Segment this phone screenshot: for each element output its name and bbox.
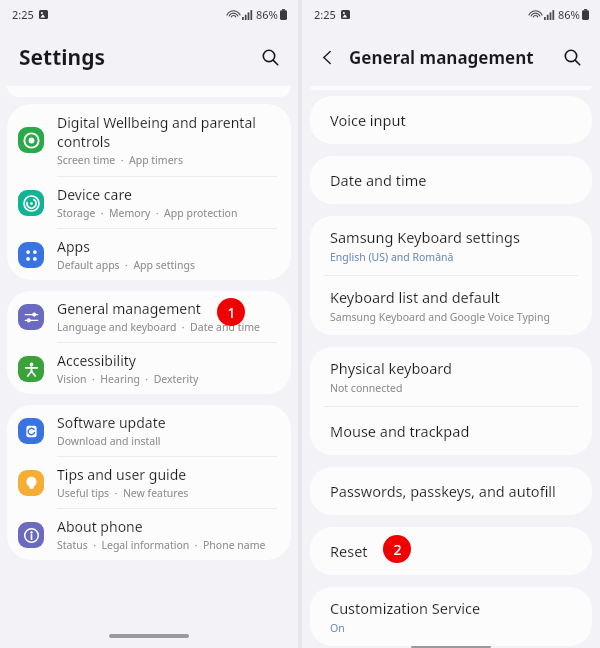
staticText: Tips and user guide (57, 465, 187, 484)
staticText: Date and time (330, 170, 427, 190)
button[interactable]: About phone (7, 509, 291, 560)
button[interactable]: Back (312, 42, 342, 72)
staticText: 1 (227, 303, 236, 322)
staticText: Voice input (330, 110, 406, 130)
staticText: Samsung Keyboard settings (330, 227, 520, 247)
staticText: Vision · Hearing · Dexterity (57, 372, 199, 386)
button[interactable]: Accessibility (7, 343, 291, 394)
staticText: 2:25 (12, 7, 34, 22)
staticText: General management (349, 46, 534, 69)
staticText: Settings (19, 43, 106, 72)
button[interactable]: Passwords, passkeys, and autofill (310, 467, 592, 515)
staticText: Accessibility (57, 351, 136, 370)
button[interactable]: Search (557, 42, 587, 72)
button[interactable]: Device care (7, 177, 291, 228)
staticText: Reset (330, 541, 368, 561)
staticText: Keyboard list and default (330, 287, 500, 307)
staticText: Status · Legal information · Phone name (57, 538, 266, 552)
staticText: Apps (57, 237, 90, 256)
staticText: Digital Wellbeing and parental controls (57, 113, 256, 151)
staticText: Mouse and trackpad (330, 421, 470, 441)
staticText: English (US) and Română (330, 250, 454, 264)
staticText: About phone (57, 517, 143, 536)
staticText: On (330, 621, 345, 635)
button[interactable]: Voice input (310, 96, 592, 144)
staticText: Device care (57, 185, 132, 204)
button[interactable]: Reset (310, 527, 592, 575)
staticText: 86% (558, 7, 580, 22)
button[interactable]: Search (255, 42, 285, 72)
staticText: Samsung Keyboard and Google Voice Typing (330, 310, 550, 324)
staticText: 86% (256, 7, 278, 22)
button[interactable]: Keyboard list and default (310, 276, 592, 335)
staticText: Screen time · App timers (57, 153, 183, 167)
staticText: Passwords, passkeys, and autofill (330, 481, 556, 501)
button[interactable]: Mouse and trackpad (310, 407, 592, 455)
staticText: Language and keyboard · Date and time (57, 320, 260, 334)
staticText: Storage · Memory · App protection (57, 206, 238, 220)
staticText: 2:25 (314, 7, 336, 22)
staticText: Software update (57, 413, 166, 432)
button[interactable]: Physical keyboard (310, 347, 592, 406)
button[interactable]: Software update (7, 405, 291, 456)
button[interactable]: Date and time (310, 156, 592, 204)
staticText: Download and install (57, 434, 161, 448)
staticText: Customization Service (330, 598, 481, 618)
button[interactable]: Customization Service (310, 587, 592, 646)
staticText: General management (57, 299, 201, 318)
staticText: Not connected (330, 381, 403, 395)
button[interactable]: Tips and user guide (7, 457, 291, 508)
staticText: Default apps · App settings (57, 258, 195, 272)
staticText: Useful tips · New features (57, 486, 189, 500)
button[interactable]: Samsung Keyboard settings (310, 216, 592, 275)
button[interactable]: Apps (7, 229, 291, 280)
button[interactable]: General management (7, 291, 291, 342)
staticText: Physical keyboard (330, 358, 452, 378)
button[interactable]: Digital Wellbeing and parental controls (7, 104, 291, 176)
staticText: 2 (393, 540, 402, 559)
